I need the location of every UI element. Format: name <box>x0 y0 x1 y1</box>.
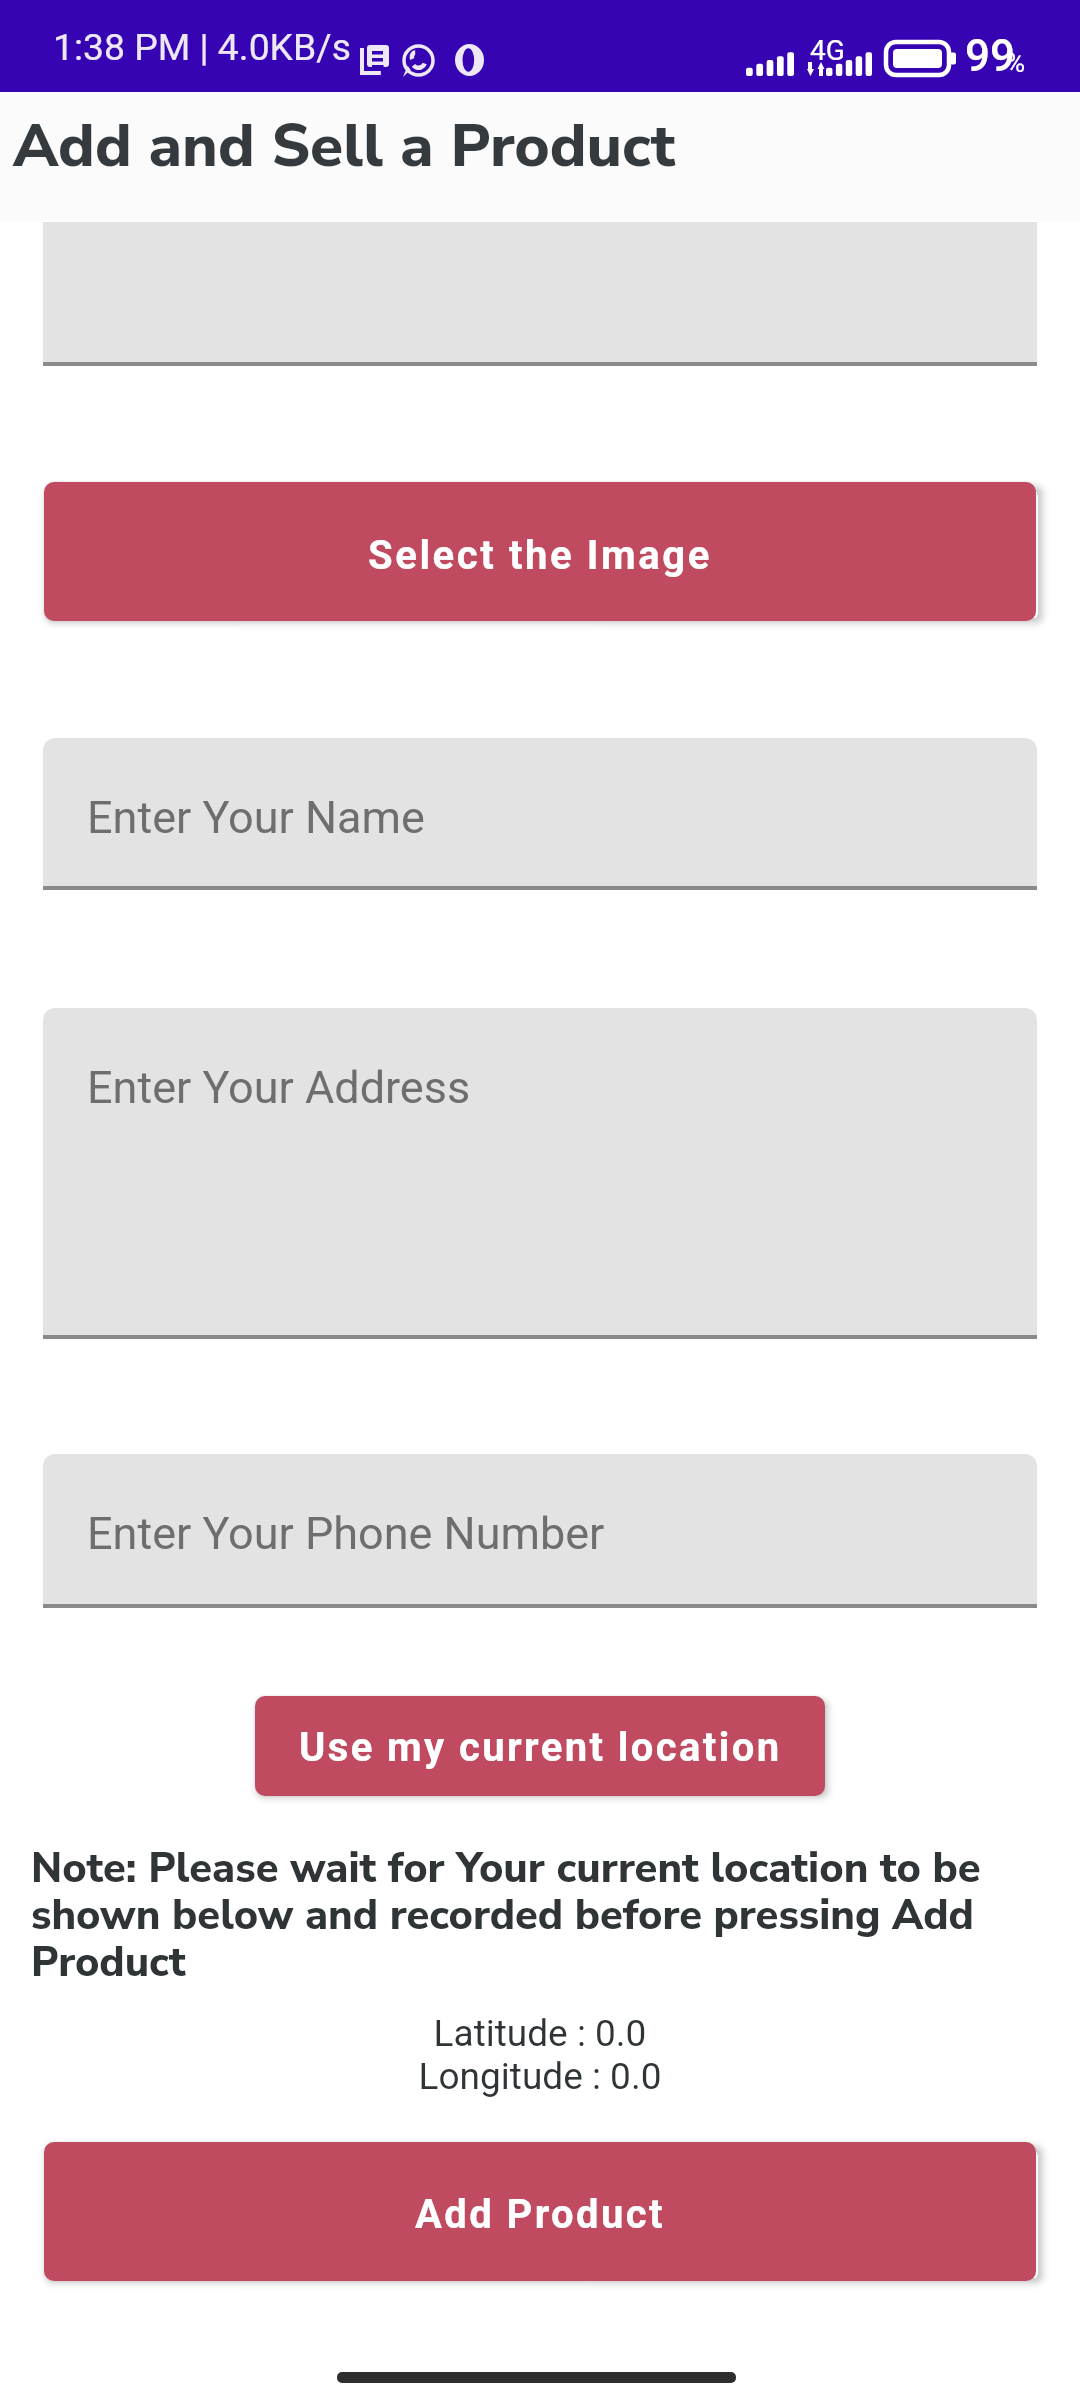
staticText: Add and Sell a Product <box>13 105 676 187</box>
button[interactable]: Add Product <box>44 2142 1036 2281</box>
other: Notes <box>360 45 389 75</box>
staticText: Enter Your Name <box>87 791 425 844</box>
staticText: Longitude : 0.0 <box>0 2055 1080 2098</box>
staticText: Note: Please wait for Your current locat… <box>31 1840 1030 1990</box>
other: Opera <box>455 44 484 76</box>
staticText: Use my current location <box>299 1724 782 1771</box>
staticText: Latitude : 0.0 <box>0 2012 1080 2055</box>
staticText: % <box>1006 48 1026 78</box>
other: WhatsApp <box>402 44 435 77</box>
staticText: Select the Image <box>368 532 713 579</box>
staticText: 99 <box>965 30 1016 82</box>
button[interactable]: Use my current location <box>255 1696 825 1796</box>
button[interactable]: Enter Your Phone Number <box>43 1454 1037 1604</box>
button[interactable]: Select the Image <box>44 482 1036 621</box>
staticText: Enter Your Address <box>87 1061 471 1114</box>
staticText: Enter Your Phone Number <box>87 1507 605 1560</box>
button[interactable]: Enter Your Address <box>43 1008 1037 1335</box>
staticText: 1:38 PM | 4.0KB/s <box>53 25 351 69</box>
staticText: Add Product <box>415 2191 665 2238</box>
button[interactable]: Enter Your Name <box>43 738 1037 886</box>
staticText: 4G <box>810 34 845 67</box>
